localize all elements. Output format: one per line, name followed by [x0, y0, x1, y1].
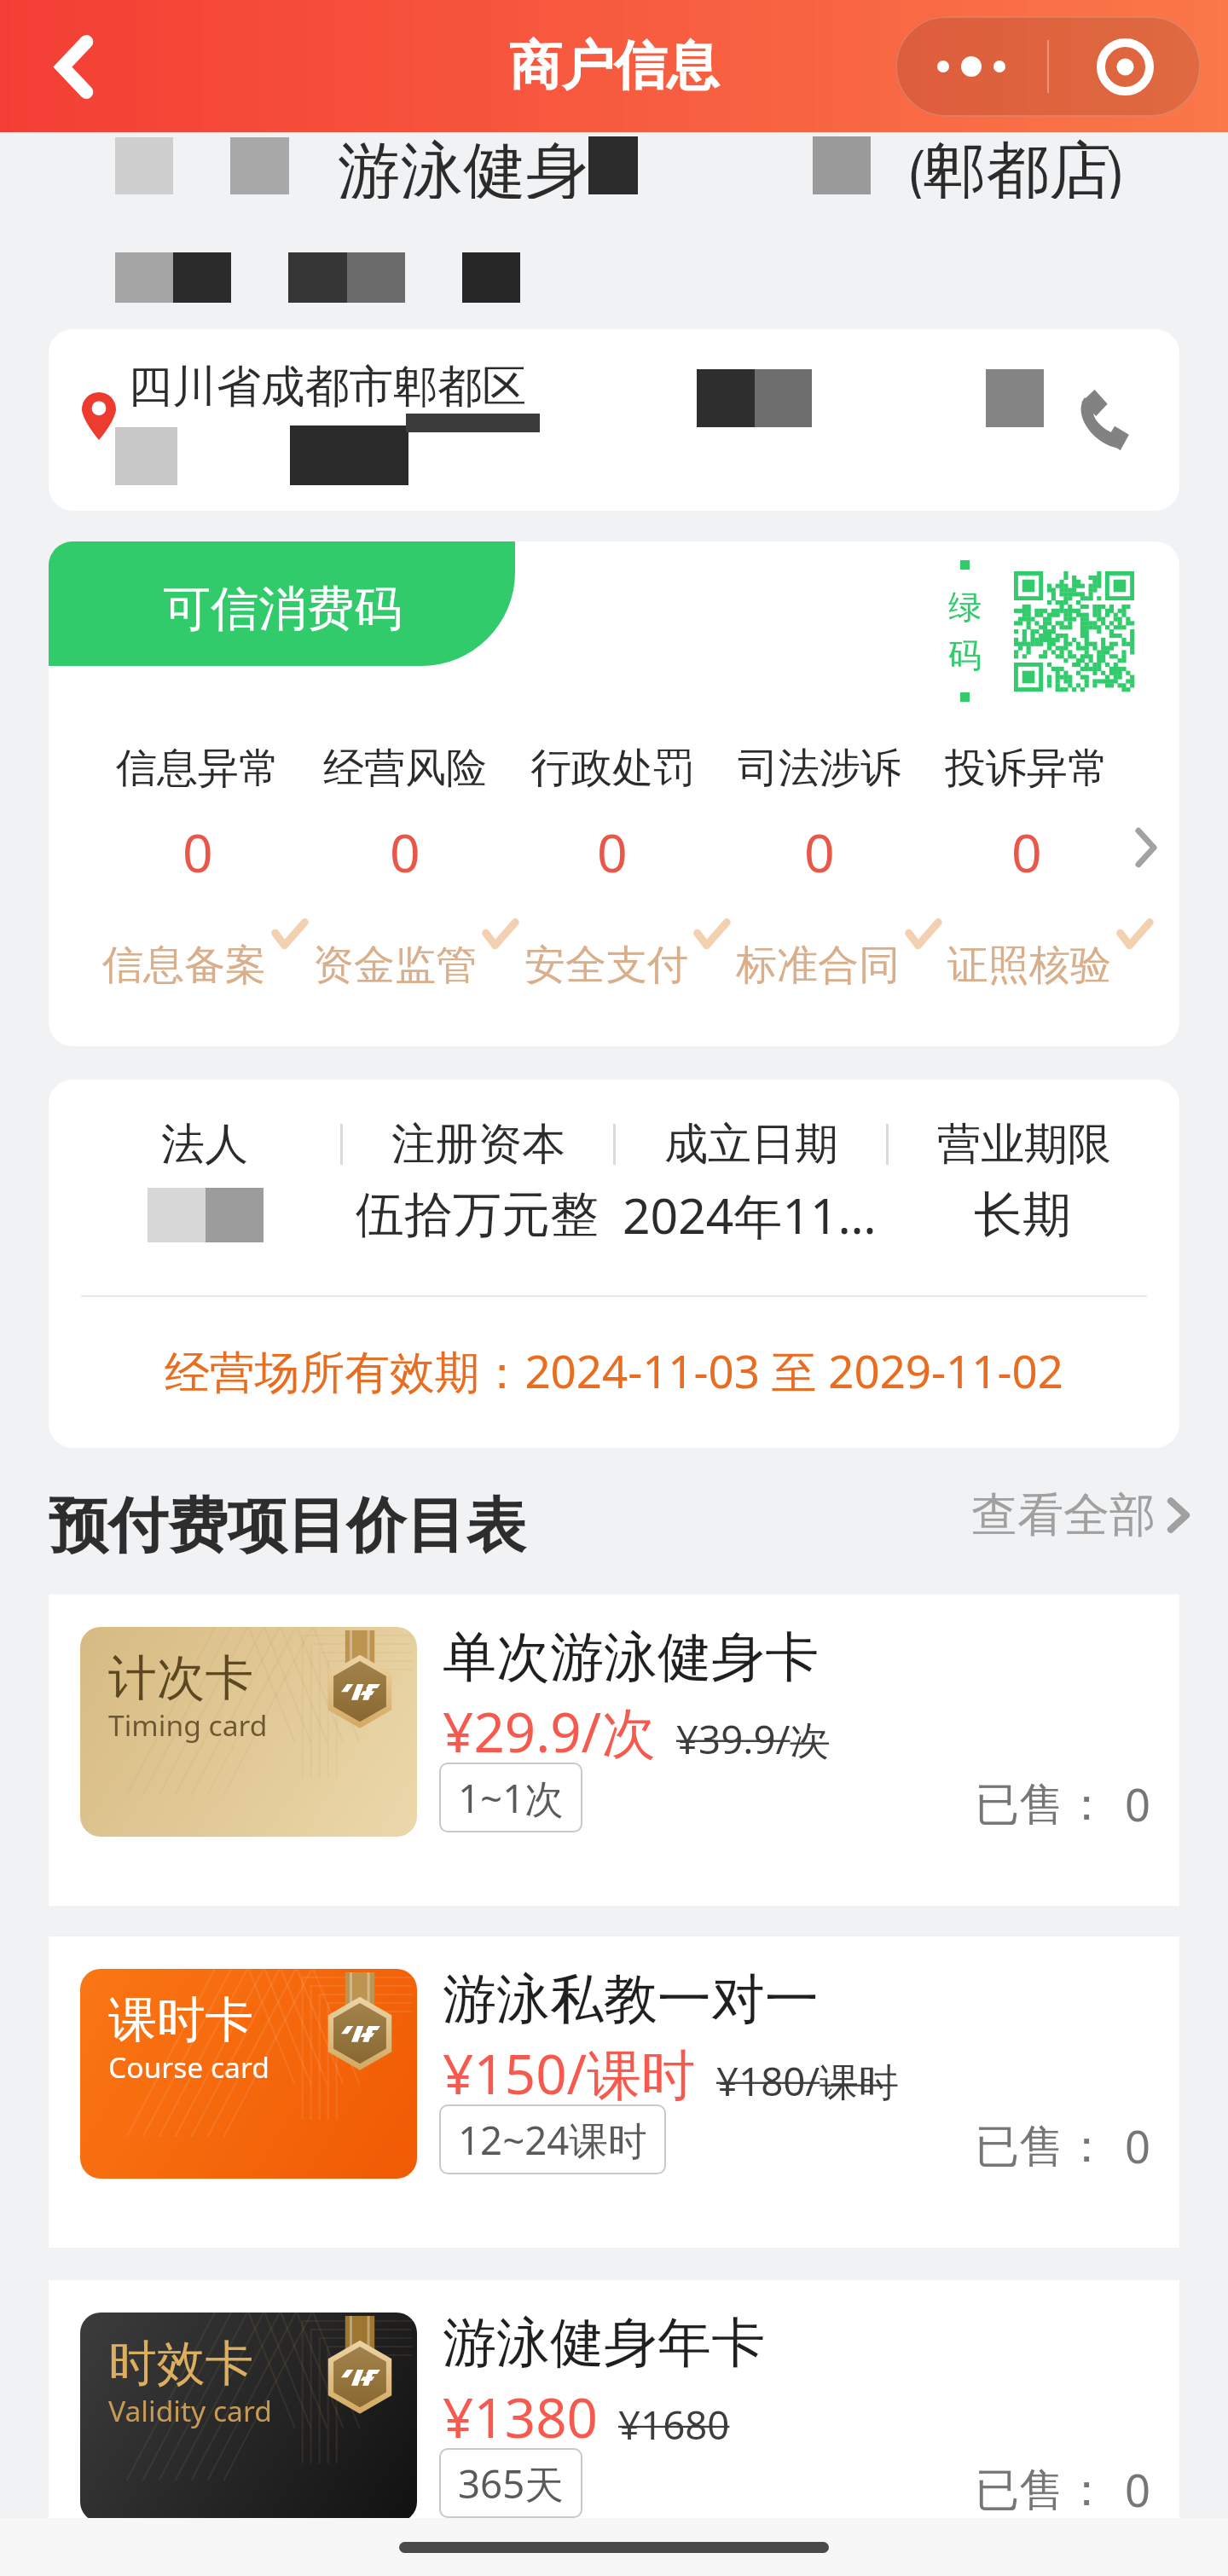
- staticText: 长期: [974, 1184, 1071, 1246]
- staticText: （: [871, 132, 934, 199]
- button[interactable]: Back: [23, 15, 125, 118]
- staticText: 0: [804, 815, 835, 888]
- staticText: 标准合同: [736, 940, 900, 991]
- staticText: 信息异常: [116, 743, 280, 794]
- staticText: 经营风险: [323, 743, 487, 794]
- staticText: 法人: [161, 1117, 248, 1172]
- staticText: 游泳健身年卡: [443, 2309, 765, 2376]
- staticText: 365天: [458, 2457, 564, 2509]
- staticText: ）: [1098, 132, 1161, 199]
- button[interactable]: Close mini program: [1049, 16, 1201, 117]
- button[interactable]: 投诉异常: [923, 743, 1130, 888]
- staticText: 0: [597, 815, 628, 888]
- staticText: 0: [1125, 1774, 1151, 1835]
- button[interactable]: 经营风险: [301, 743, 508, 888]
- staticText: 已售：: [975, 2118, 1109, 2174]
- staticText: 信息备案: [102, 940, 266, 991]
- staticText: ¥150/课时: [443, 2036, 696, 2110]
- staticText: 查看全部: [971, 1486, 1156, 1544]
- staticText: Timing card: [108, 1705, 268, 1745]
- staticText: 游泳健身: [338, 132, 588, 199]
- staticText: 司法涉诉: [738, 743, 901, 794]
- button[interactable]: 课时卡: [49, 1936, 1179, 2248]
- button[interactable]: 查看全部: [971, 1486, 1190, 1544]
- button[interactable]: 四川省成都市郫都区: [49, 329, 1179, 511]
- staticText: 投诉异常: [945, 743, 1109, 794]
- staticText: 四川省成都市郫都区: [128, 359, 527, 414]
- button[interactable]: 时效卡: [49, 2280, 1179, 2518]
- button[interactable]: More options: [895, 16, 1047, 117]
- staticText: Course card: [108, 2047, 269, 2087]
- staticText: ¥29.9/次: [443, 1694, 656, 1768]
- staticText: 单次游泳健身卡: [443, 1624, 819, 1691]
- staticText: 绿: [948, 586, 982, 628]
- button[interactable]: 行政处罚: [508, 743, 715, 888]
- staticText: ¥1380: [443, 2380, 598, 2454]
- staticText: 郫都店: [924, 132, 1112, 199]
- staticText: 成立日期: [664, 1117, 838, 1172]
- staticText: 0: [1125, 2459, 1151, 2518]
- staticText: 12~24课时: [458, 2113, 647, 2166]
- staticText: 证照核验: [947, 940, 1111, 991]
- staticText: 注册资本: [391, 1117, 565, 1172]
- staticText: 0: [390, 815, 420, 888]
- staticText: 课时卡: [108, 1989, 254, 2050]
- staticText: 0: [1011, 815, 1042, 888]
- staticText: Validity card: [108, 2391, 272, 2430]
- staticText: 预付费项目价目表: [49, 1489, 526, 1564]
- staticText: 安全支付: [524, 940, 688, 991]
- staticText: 0: [182, 815, 213, 888]
- staticText: ¥1680: [618, 2398, 730, 2451]
- button[interactable]: Call merchant: [1066, 376, 1146, 456]
- staticText: 0: [1125, 2116, 1151, 2177]
- staticText: 码: [948, 634, 982, 676]
- staticText: 已售：: [975, 1776, 1109, 1832]
- button[interactable]: 信息异常: [95, 743, 301, 888]
- staticText: 计次卡: [108, 1647, 254, 1708]
- staticText: 资金监管: [313, 940, 477, 991]
- button[interactable]: Green code QR: [948, 560, 1134, 702]
- staticText: 已售：: [975, 2462, 1109, 2518]
- button[interactable]: 司法涉诉: [715, 743, 923, 888]
- staticText: 时效卡: [108, 2333, 254, 2394]
- staticText: 游泳私教一对一: [443, 1965, 819, 2033]
- staticText: ¥180/课时: [716, 2054, 898, 2107]
- staticText: 可信消费码: [163, 579, 403, 640]
- staticText: ¥39.9/次: [676, 1712, 830, 1765]
- staticText: 行政处罚: [530, 743, 694, 794]
- staticText: 2024年11…: [623, 1182, 877, 1248]
- staticText: 商户信息: [509, 33, 719, 99]
- button[interactable]: 计次卡: [49, 1595, 1179, 1906]
- staticText: 经营场所有效期：2024-11-03 至 2029-11-02: [165, 1340, 1063, 1402]
- staticText: 伍拾万元整: [356, 1184, 599, 1246]
- staticText: 1~1次: [458, 1771, 564, 1824]
- staticText: 营业期限: [937, 1117, 1111, 1172]
